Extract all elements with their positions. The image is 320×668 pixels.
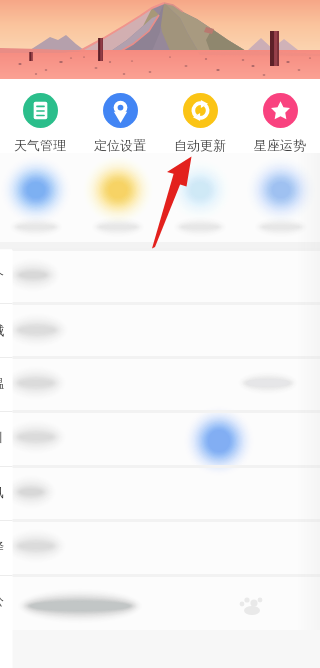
- staticText: 降: [0, 538, 1, 554]
- button[interactable]: 自动更新: [160, 79, 240, 153]
- staticText: 天气管理: [14, 137, 66, 153]
- button[interactable]: 定位设置: [80, 79, 160, 153]
- staticText: 城: [0, 322, 1, 338]
- staticText: 温: [0, 375, 1, 391]
- staticText: 个: [0, 267, 1, 283]
- staticText: 风: [0, 484, 1, 500]
- staticText: 星座运势: [254, 137, 306, 153]
- button[interactable]: 星座运势: [240, 79, 320, 153]
- staticText: 公: [0, 592, 1, 608]
- staticText: 自动更新: [174, 137, 226, 153]
- button[interactable]: 天气管理: [0, 79, 80, 153]
- staticText: 定位设置: [94, 137, 146, 153]
- staticText: 引: [0, 429, 1, 445]
